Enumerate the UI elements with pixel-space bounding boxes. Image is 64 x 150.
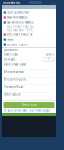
staticText: Item sale (3, 58, 15, 61)
staticText: Telecom inquiry (3, 78, 25, 81)
staticText: eventbrite (3, 0, 20, 5)
staticText: Sample (45, 53, 54, 56)
staticText: Questions (3, 48, 17, 52)
staticText: 1 (48, 58, 50, 61)
staticText: BTS: Ticket Value Se (7, 33, 33, 36)
staticText: Order now (21, 103, 36, 107)
staticText: Order adjust (3, 93, 20, 96)
staticText: + (52, 58, 54, 61)
button[interactable]: Order now (3, 102, 54, 108)
staticText: Name (7, 38, 14, 41)
staticText: Remote Cation (7, 43, 28, 46)
staticText: To your price sale, our ticket page (3, 109, 50, 112)
staticText: Hot Pocket Cafe Ro (7, 25, 34, 28)
staticText: TIDE: Summer/Fall (7, 11, 29, 14)
staticText: ⌄⌄ (51, 1, 55, 4)
staticText: Telecom service (3, 70, 24, 74)
staticText: San Antonio Marble (7, 21, 34, 24)
staticText: Ticket Class (3, 53, 17, 56)
staticText: – (44, 58, 45, 61)
staticText: Premium Rush (3, 85, 23, 89)
staticText: New York Marble (7, 16, 28, 19)
staticText: Old Lake Ave • 876 (7, 28, 33, 32)
staticText: Valid email name (3, 63, 26, 66)
